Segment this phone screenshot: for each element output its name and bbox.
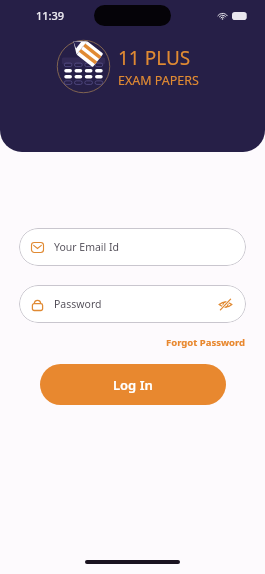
staticText: Password — [54, 297, 102, 311]
staticText: 11:39 — [36, 8, 65, 23]
staticText: EXAM PAPERS — [118, 72, 199, 89]
button[interactable]: Show password — [215, 294, 235, 314]
button[interactable]: Forgot Password — [164, 333, 248, 352]
button[interactable]: Email — [19, 228, 246, 266]
button[interactable]: Log In — [40, 364, 226, 405]
staticText: Forgot Password — [166, 336, 246, 349]
staticText: 11 PLUS — [118, 45, 191, 71]
other: Email — [30, 240, 45, 255]
other: Password — [30, 297, 45, 312]
staticText: Log In — [113, 376, 153, 394]
staticText: Your Email Id — [54, 240, 120, 254]
button[interactable]: Password — [19, 285, 246, 323]
